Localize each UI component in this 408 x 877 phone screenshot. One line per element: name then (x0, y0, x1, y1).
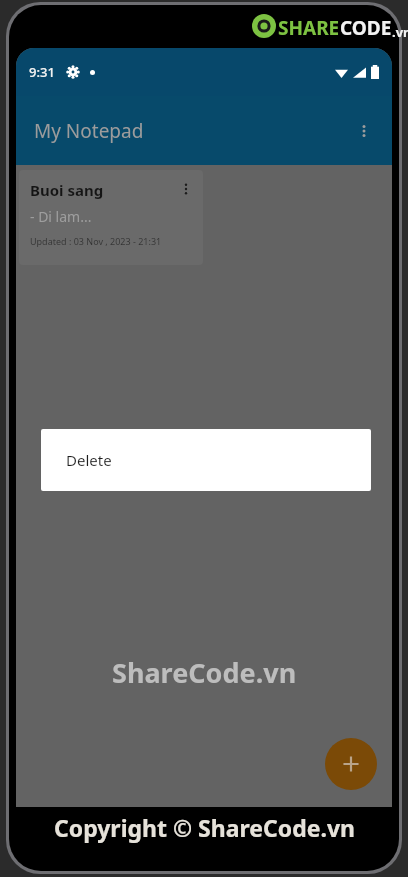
staticText: My Notepad (34, 118, 144, 144)
staticText: 9:31 (29, 63, 55, 81)
staticText: ShareCode.vn (112, 654, 297, 691)
staticText: Delete (66, 450, 112, 470)
button[interactable]: Note options (177, 180, 195, 198)
staticText: - Di lam... (30, 207, 92, 226)
staticText: Updated : 03 Nov , 2023 - 21:31 (30, 235, 162, 247)
button[interactable]: More options (344, 111, 384, 151)
staticText: SHARE (278, 15, 340, 41)
button[interactable]: Add note (325, 738, 377, 790)
button[interactable]: Buoi sang (19, 170, 203, 265)
staticText: Copyright © ShareCode.vn (54, 812, 355, 843)
staticText: CODE (340, 15, 392, 41)
button[interactable]: Delete (41, 429, 371, 491)
staticText: Buoi sang (30, 180, 104, 200)
staticText: .vn (392, 23, 408, 41)
